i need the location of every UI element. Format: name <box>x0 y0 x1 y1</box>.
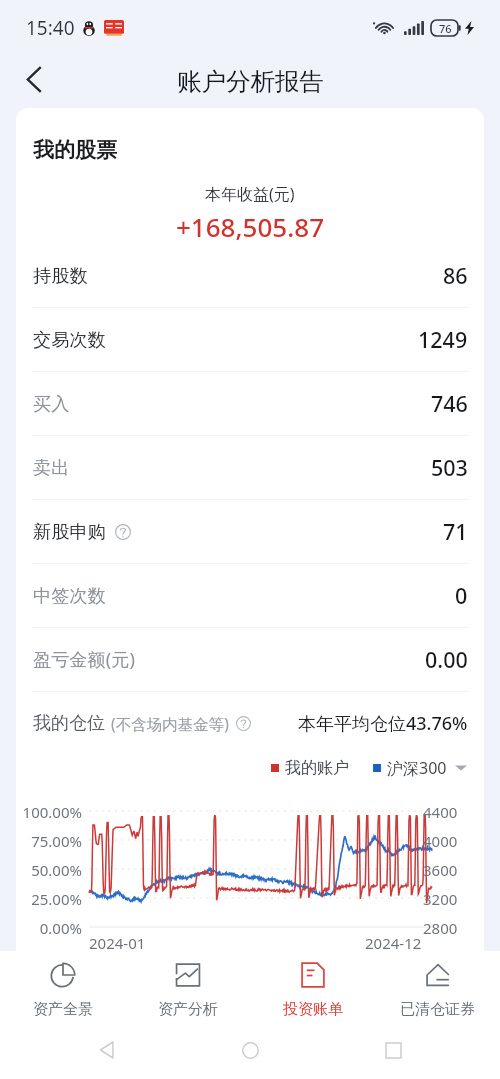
staticText: 账户分析报告 <box>177 66 324 97</box>
staticText: 投资账单 <box>283 1000 343 1019</box>
staticText: 我的账户 <box>285 758 349 778</box>
button[interactable]: 买入 <box>16 372 484 436</box>
staticText: 4000 <box>423 831 458 851</box>
staticText: 持股数 <box>33 264 88 287</box>
staticText: 资产全景 <box>33 1000 93 1019</box>
staticText: 2024-01 <box>89 933 146 951</box>
staticText: 0 <box>455 581 468 610</box>
button[interactable]: Recents <box>376 1033 410 1067</box>
staticText: 已清仓证券 <box>400 1000 475 1019</box>
staticText: 本年收益(元) <box>205 183 295 205</box>
staticText: 本年平均仓位43.76% <box>298 711 468 736</box>
staticText: 卖出 <box>33 456 70 479</box>
button[interactable]: 投资账单 <box>250 951 375 1021</box>
staticText: +168,505.87 <box>176 209 325 244</box>
staticText: 2800 <box>423 918 458 938</box>
staticText: (不含场内基金等) <box>111 713 229 734</box>
staticText: 50.00% <box>16 860 82 880</box>
button[interactable]: 卖出 <box>16 436 484 500</box>
button[interactable]: 持股数 <box>16 244 484 308</box>
staticText: 503 <box>431 453 468 482</box>
staticText: 我的仓位 <box>33 712 105 735</box>
staticText: 86 <box>443 261 468 290</box>
button[interactable]: Home <box>233 1033 267 1067</box>
staticText: 25.00% <box>16 889 82 909</box>
staticText: 100.00% <box>16 802 82 822</box>
staticText: 我的股票 <box>33 137 117 163</box>
staticText: 746 <box>431 389 468 418</box>
staticText: 沪深300 <box>387 757 447 779</box>
staticText: 1249 <box>418 325 468 354</box>
button[interactable]: 资产分析 <box>125 951 250 1021</box>
staticText: 71 <box>443 517 468 546</box>
staticText: 4400 <box>423 802 458 822</box>
staticText: 2024-12 <box>365 933 422 951</box>
button[interactable]: Back <box>90 1033 124 1067</box>
staticText: 盈亏金额(元) <box>33 647 135 672</box>
button[interactable]: 新股申购 <box>16 500 484 564</box>
staticText: 0.00 <box>425 645 468 674</box>
staticText: 76 <box>439 21 452 36</box>
button[interactable]: 中签次数 <box>16 564 484 628</box>
button[interactable]: 已清仓证券 <box>375 951 500 1021</box>
staticText: 3200 <box>423 889 458 909</box>
staticText: 交易次数 <box>33 328 106 351</box>
staticText: 15:40 <box>26 15 75 41</box>
button[interactable]: 盈亏金额(元) <box>16 628 484 692</box>
staticText: 3600 <box>423 860 458 880</box>
staticText: 75.00% <box>16 831 82 851</box>
button[interactable]: Back <box>12 57 56 101</box>
button[interactable]: 资产全景 <box>0 951 125 1021</box>
staticText: 资产分析 <box>158 1000 218 1019</box>
staticText: 新股申购 <box>33 520 106 543</box>
button[interactable]: 交易次数 <box>16 308 484 372</box>
staticText: 中签次数 <box>33 584 106 607</box>
staticText: 买入 <box>33 392 70 415</box>
staticText: 0.00% <box>16 918 82 938</box>
